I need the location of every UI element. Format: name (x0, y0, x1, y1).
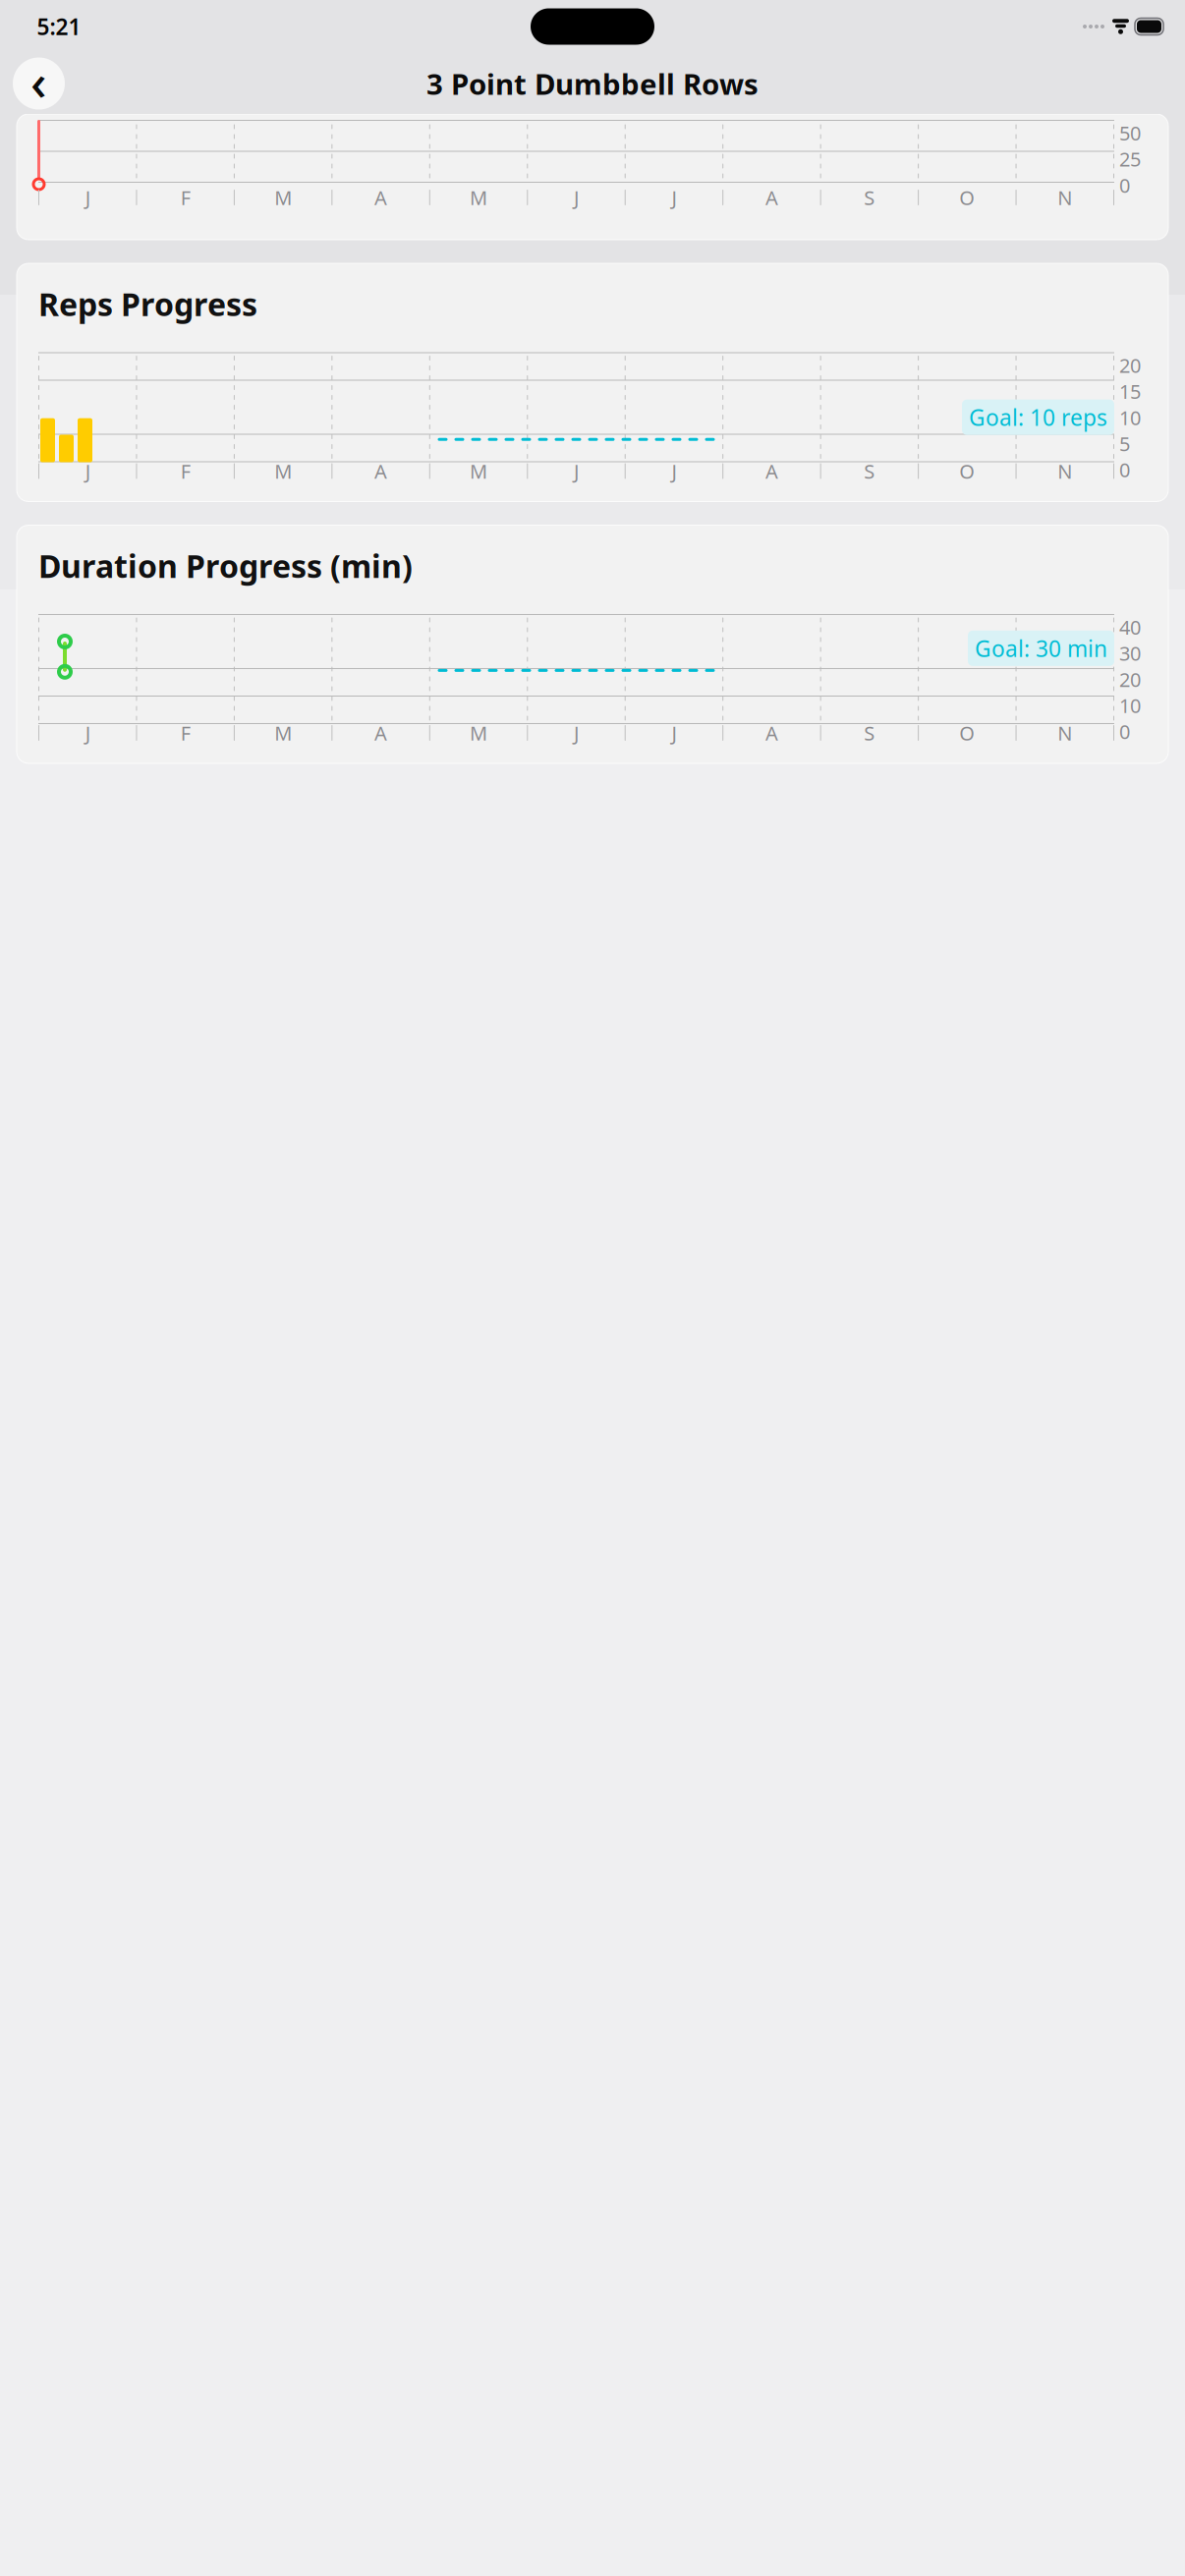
staticText: S (864, 184, 875, 211)
staticText: O (959, 720, 975, 746)
staticText: Duration Progress (min) (38, 545, 413, 587)
staticText: M (274, 458, 292, 484)
staticText: N (1058, 458, 1072, 484)
staticText: N (1058, 184, 1072, 211)
staticText: 30 (1119, 640, 1141, 666)
staticText: J (574, 184, 579, 211)
staticText: 5:21 (37, 12, 81, 41)
staticText: 0 (1119, 718, 1130, 745)
staticText: J (85, 720, 90, 746)
staticText: Goal: 30 min (975, 633, 1107, 663)
staticText: A (765, 184, 778, 211)
staticText: J (574, 720, 579, 746)
staticText: 0 (1119, 172, 1130, 198)
staticText: M (274, 184, 292, 211)
staticText: Goal: 10 reps (969, 403, 1107, 432)
staticText: 20 (1119, 666, 1141, 692)
staticText: 3 Point Dumbbell Rows (426, 64, 759, 103)
staticText: J (672, 720, 677, 746)
staticText: 0 (1119, 457, 1130, 483)
staticText: Reps Progress (38, 283, 257, 325)
button[interactable]: Back (13, 57, 65, 110)
staticText: O (959, 458, 975, 484)
staticText: 25 (1119, 146, 1141, 172)
staticText: O (959, 184, 975, 211)
staticText: A (374, 720, 387, 746)
staticText: M (470, 458, 487, 484)
staticText: M (274, 720, 292, 746)
staticText: F (181, 458, 190, 484)
staticText: 15 (1119, 378, 1141, 404)
staticText: A (374, 458, 387, 484)
staticText: S (864, 458, 875, 484)
staticText: J (85, 458, 90, 484)
staticText: 20 (1119, 352, 1141, 378)
staticText: A (374, 184, 387, 211)
staticText: A (765, 720, 778, 746)
staticText: ‹ (30, 48, 47, 114)
staticText: J (574, 458, 579, 484)
staticText: 10 (1119, 404, 1141, 431)
staticText: M (470, 184, 487, 211)
staticText: F (181, 720, 190, 746)
staticText: N (1058, 720, 1072, 746)
staticText: S (864, 720, 875, 746)
staticText: 50 (1119, 120, 1141, 146)
staticText: 10 (1119, 692, 1141, 718)
staticText: M (470, 720, 487, 746)
staticText: A (765, 458, 778, 484)
staticText: J (672, 184, 677, 211)
staticText: J (85, 184, 90, 211)
staticText: F (181, 184, 190, 211)
staticText: 5 (1119, 431, 1130, 457)
staticText: J (672, 458, 677, 484)
staticText: 40 (1119, 614, 1141, 640)
